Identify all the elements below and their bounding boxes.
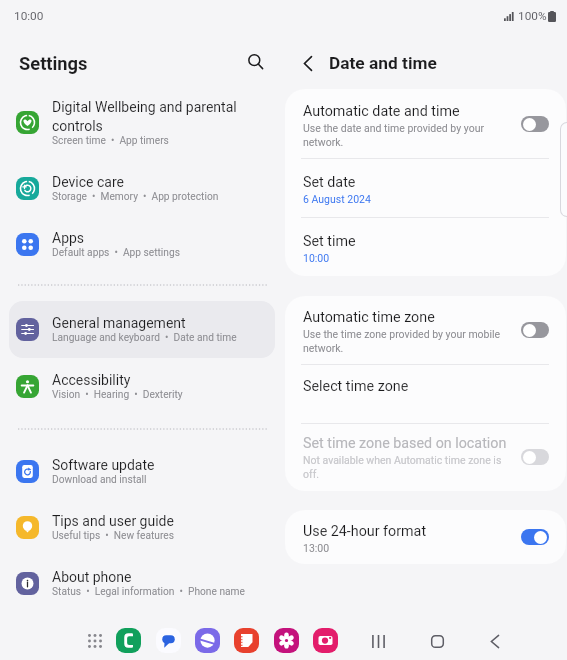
button[interactable]: Gallery bbox=[274, 628, 299, 653]
button[interactable]: Toggle bbox=[521, 322, 549, 338]
button[interactable]: Tips and user guide bbox=[9, 499, 275, 555]
button[interactable]: Automatic date and time bbox=[285, 89, 566, 158]
button[interactable]: Phone bbox=[116, 628, 141, 653]
staticText: Set time bbox=[303, 233, 356, 250]
staticText: Use the date and time provided by your n… bbox=[303, 122, 484, 149]
button[interactable]: Search bbox=[240, 46, 271, 77]
staticText: Download and install bbox=[52, 474, 147, 486]
button[interactable]: Accessibility bbox=[9, 358, 275, 414]
button[interactable]: All apps bbox=[81, 627, 108, 654]
staticText: Accessibility bbox=[52, 372, 131, 388]
staticText: Use 24-hour format bbox=[303, 523, 427, 540]
staticText: Select time zone bbox=[303, 378, 409, 395]
staticText: General management bbox=[52, 315, 186, 331]
button[interactable]: Device care bbox=[9, 160, 275, 216]
button[interactable]: General management bbox=[9, 301, 275, 357]
staticText: Settings bbox=[19, 53, 88, 74]
staticText: Automatic time zone bbox=[303, 309, 435, 326]
button[interactable]: Internet bbox=[195, 628, 220, 653]
staticText: Digital Wellbeing and parental controls bbox=[52, 99, 237, 134]
staticText: Set date bbox=[303, 174, 356, 191]
button[interactable]: About phone bbox=[9, 555, 275, 611]
staticText: Date and time bbox=[329, 53, 437, 73]
button[interactable]: Back bbox=[482, 628, 508, 654]
staticText: Default apps • App settings bbox=[52, 247, 180, 259]
button[interactable]: Recents bbox=[365, 628, 391, 654]
staticText: 10:00 bbox=[303, 252, 330, 264]
button[interactable]: Toggle bbox=[521, 449, 549, 465]
button[interactable]: Messages bbox=[156, 628, 181, 653]
staticText: 6 August 2024 bbox=[303, 193, 371, 205]
staticText: Useful tips • New features bbox=[52, 530, 174, 542]
staticText: Device care bbox=[52, 174, 124, 190]
staticText: Status • Legal information • Phone name bbox=[52, 586, 245, 598]
staticText: 13:00 bbox=[303, 542, 330, 554]
button[interactable]: Digital Wellbeing and parental controls bbox=[9, 90, 275, 155]
button[interactable]: Apps bbox=[9, 216, 275, 272]
button[interactable]: Set date bbox=[285, 158, 566, 217]
staticText: 100% bbox=[518, 9, 547, 23]
button[interactable]: Notes bbox=[234, 628, 259, 653]
staticText: 10:00 bbox=[14, 9, 44, 23]
staticText: Screen time • App timers bbox=[52, 135, 169, 147]
staticText: About phone bbox=[52, 569, 132, 585]
button[interactable]: Use 24-hour format bbox=[285, 510, 566, 564]
staticText: Tips and user guide bbox=[52, 513, 174, 529]
staticText: Storage • Memory • App protection bbox=[52, 191, 219, 203]
staticText: Vision • Hearing • Dexterity bbox=[52, 389, 183, 401]
button[interactable]: Home bbox=[424, 628, 450, 654]
button[interactable]: Toggle bbox=[521, 116, 549, 132]
button[interactable]: Back bbox=[292, 47, 324, 79]
button[interactable]: Select time zone bbox=[285, 364, 566, 423]
staticText: Automatic date and time bbox=[303, 103, 460, 120]
staticText: Not available when Automatic time zone i… bbox=[303, 454, 502, 481]
button[interactable]: Toggle bbox=[521, 529, 549, 545]
button[interactable]: Set time zone based on location bbox=[285, 423, 566, 491]
button[interactable]: Camera bbox=[313, 628, 338, 653]
button[interactable]: Set time bbox=[285, 217, 566, 275]
staticText: Set time zone based on location bbox=[303, 435, 507, 452]
staticText: Use the time zone provided by your mobil… bbox=[303, 328, 501, 355]
button[interactable]: Software update bbox=[9, 443, 275, 499]
staticText: Software update bbox=[52, 457, 155, 473]
button[interactable]: Automatic time zone bbox=[285, 296, 566, 364]
staticText: Language and keyboard • Date and time bbox=[52, 332, 237, 344]
staticText: Apps bbox=[52, 230, 85, 246]
